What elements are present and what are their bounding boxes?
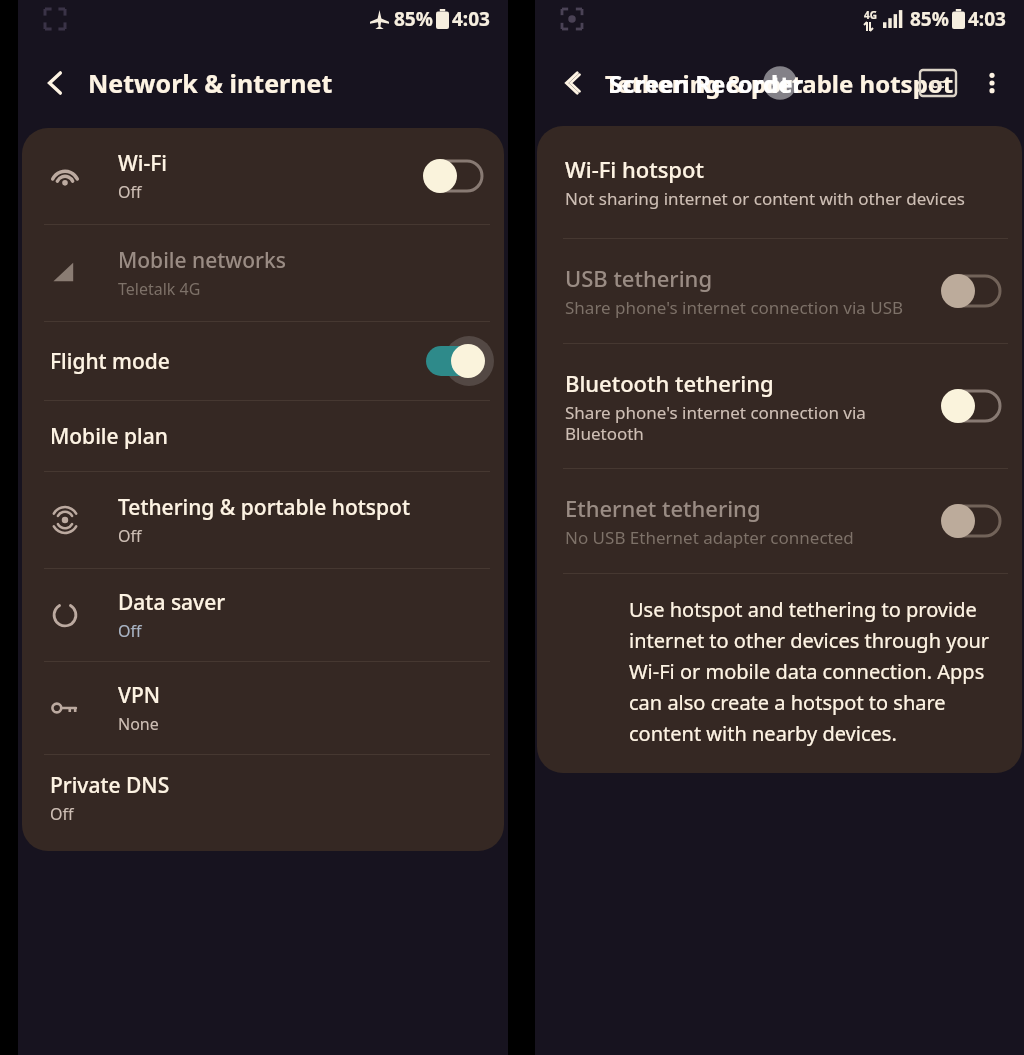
button[interactable]: Bluetooth tethering (537, 344, 1022, 468)
staticText: cc (931, 74, 945, 92)
button[interactable]: Tethering & portable hotspot (22, 472, 504, 568)
staticText: Screen Recorder (609, 67, 804, 100)
button[interactable]: Turn on (934, 495, 1010, 547)
staticText: Mobile networks (118, 246, 286, 275)
staticText: 85% (394, 6, 433, 32)
staticText: Off (118, 181, 142, 203)
button[interactable]: Turn off (416, 335, 492, 387)
button[interactable]: Mobile plan (22, 401, 504, 471)
staticText: Wi-Fi (118, 149, 167, 178)
staticText: 4G (864, 8, 877, 22)
button[interactable]: Flight mode (22, 322, 504, 400)
staticText: Mobile plan (50, 422, 168, 451)
staticText: Share phone's internet connection via US… (565, 296, 904, 319)
staticText: Off (118, 525, 142, 547)
button[interactable]: Private DNS (22, 755, 504, 841)
button[interactable]: USB tethering (537, 239, 1022, 343)
staticText: Use hotspot and tethering to provide int… (629, 596, 1000, 747)
button[interactable]: Wi-Fi (22, 128, 504, 224)
button[interactable]: Pause recording (760, 63, 800, 103)
button[interactable]: Turn on (416, 150, 492, 202)
button[interactable]: Turn on (934, 380, 1010, 432)
button[interactable]: Mobile networks (22, 225, 504, 321)
button[interactable]: VPN (22, 662, 504, 754)
staticText: None (118, 713, 159, 735)
staticText: USB tethering (565, 263, 713, 293)
staticText: No USB Ethernet adapter connected (565, 526, 854, 549)
staticText: Wi-Fi hotspot (565, 154, 704, 184)
staticText: Flight mode (50, 347, 170, 376)
button[interactable]: More options (972, 63, 1012, 103)
button[interactable]: Turn on (934, 265, 1010, 317)
staticText: Not sharing internet or content with oth… (565, 187, 965, 210)
button[interactable]: Captions (920, 70, 956, 96)
staticText: Off (118, 620, 142, 642)
staticText: Teletalk 4G (118, 278, 201, 300)
staticText: Data saver (118, 588, 226, 617)
staticText: Tethering & portable hotspot (605, 67, 954, 100)
staticText: Off (50, 803, 74, 825)
staticText: 4:03 (452, 6, 490, 32)
button[interactable]: Ethernet tethering (537, 469, 1022, 573)
button[interactable]: Back (551, 61, 595, 105)
staticText: VPN (118, 681, 161, 710)
button[interactable]: Wi-Fi hotspot (537, 126, 1022, 238)
staticText: Share phone's internet connection via Bl… (565, 401, 926, 445)
staticText: Tethering & portable hotspot (118, 493, 410, 522)
staticText: Ethernet tethering (565, 493, 761, 523)
staticText: Bluetooth tethering (565, 368, 774, 398)
staticText: Private DNS (50, 771, 170, 800)
staticText: 85% (910, 6, 949, 32)
button[interactable]: Back (34, 61, 78, 105)
staticText: Network & internet (88, 66, 333, 100)
button[interactable]: Data saver (22, 569, 504, 661)
staticText: 4:03 (968, 6, 1006, 32)
